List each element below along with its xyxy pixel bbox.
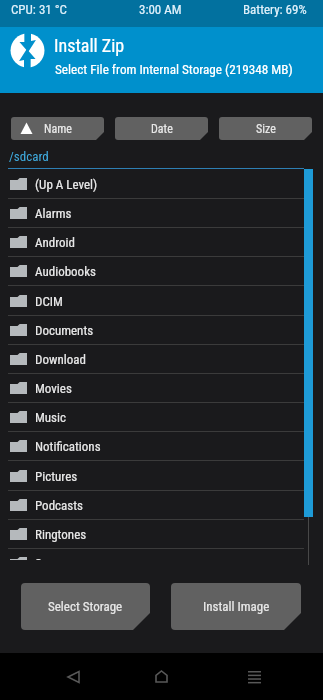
staticText: Install Image <box>203 599 270 614</box>
staticText: Battery: 69% <box>243 2 307 17</box>
button[interactable]: Date <box>115 117 208 140</box>
button[interactable]: DCIM <box>0 287 323 316</box>
staticText: Notifications <box>35 439 101 454</box>
staticText: /sdcard <box>9 149 49 164</box>
staticText: Audiobooks <box>35 264 96 279</box>
staticText: Alarms <box>35 206 72 221</box>
button[interactable]: Ringtones <box>0 520 323 549</box>
staticText: Podcasts <box>35 498 84 513</box>
button[interactable]: Download <box>0 345 323 374</box>
staticText: Android <box>35 235 76 250</box>
button[interactable]: Documents <box>0 316 323 345</box>
staticText: Music <box>35 410 67 425</box>
button[interactable]: Name <box>11 117 104 140</box>
button[interactable]: Alarms <box>0 199 323 228</box>
button[interactable]: Samsung <box>0 549 323 560</box>
button[interactable]: (Up A Level) <box>0 170 323 199</box>
staticText: Samsung <box>35 556 83 560</box>
staticText: Select File from Internal Storage (21934… <box>55 62 293 77</box>
staticText: Pictures <box>35 469 78 484</box>
button[interactable]: Music <box>0 403 323 432</box>
staticText: DCIM <box>35 294 63 309</box>
button[interactable]: Select Storage <box>21 583 150 630</box>
button[interactable]: Menu <box>233 655 276 698</box>
staticText: Install Zip <box>54 35 125 56</box>
button[interactable]: Android <box>0 228 323 257</box>
button[interactable]: Size <box>219 117 312 140</box>
button[interactable]: Home <box>140 655 183 698</box>
staticText: Documents <box>35 323 94 338</box>
button[interactable]: Podcasts <box>0 491 323 520</box>
staticText: Download <box>35 352 86 367</box>
button[interactable]: Install Image <box>171 583 301 630</box>
button[interactable]: Notifications <box>0 432 323 461</box>
staticText: CPU: 31 °C <box>11 2 67 17</box>
staticText: Movies <box>35 381 72 396</box>
button[interactable]: Back <box>52 655 95 698</box>
staticText: Name <box>44 122 72 136</box>
button[interactable]: Audiobooks <box>0 257 323 286</box>
staticText: 3:00 AM <box>139 2 182 17</box>
button[interactable]: Pictures <box>0 462 323 491</box>
staticText: Size <box>256 122 276 136</box>
staticText: Ringtones <box>35 527 87 542</box>
staticText: (Up A Level) <box>35 177 98 192</box>
staticText: Select Storage <box>48 599 123 614</box>
staticText: Date <box>151 122 173 136</box>
button[interactable]: Movies <box>0 374 323 403</box>
